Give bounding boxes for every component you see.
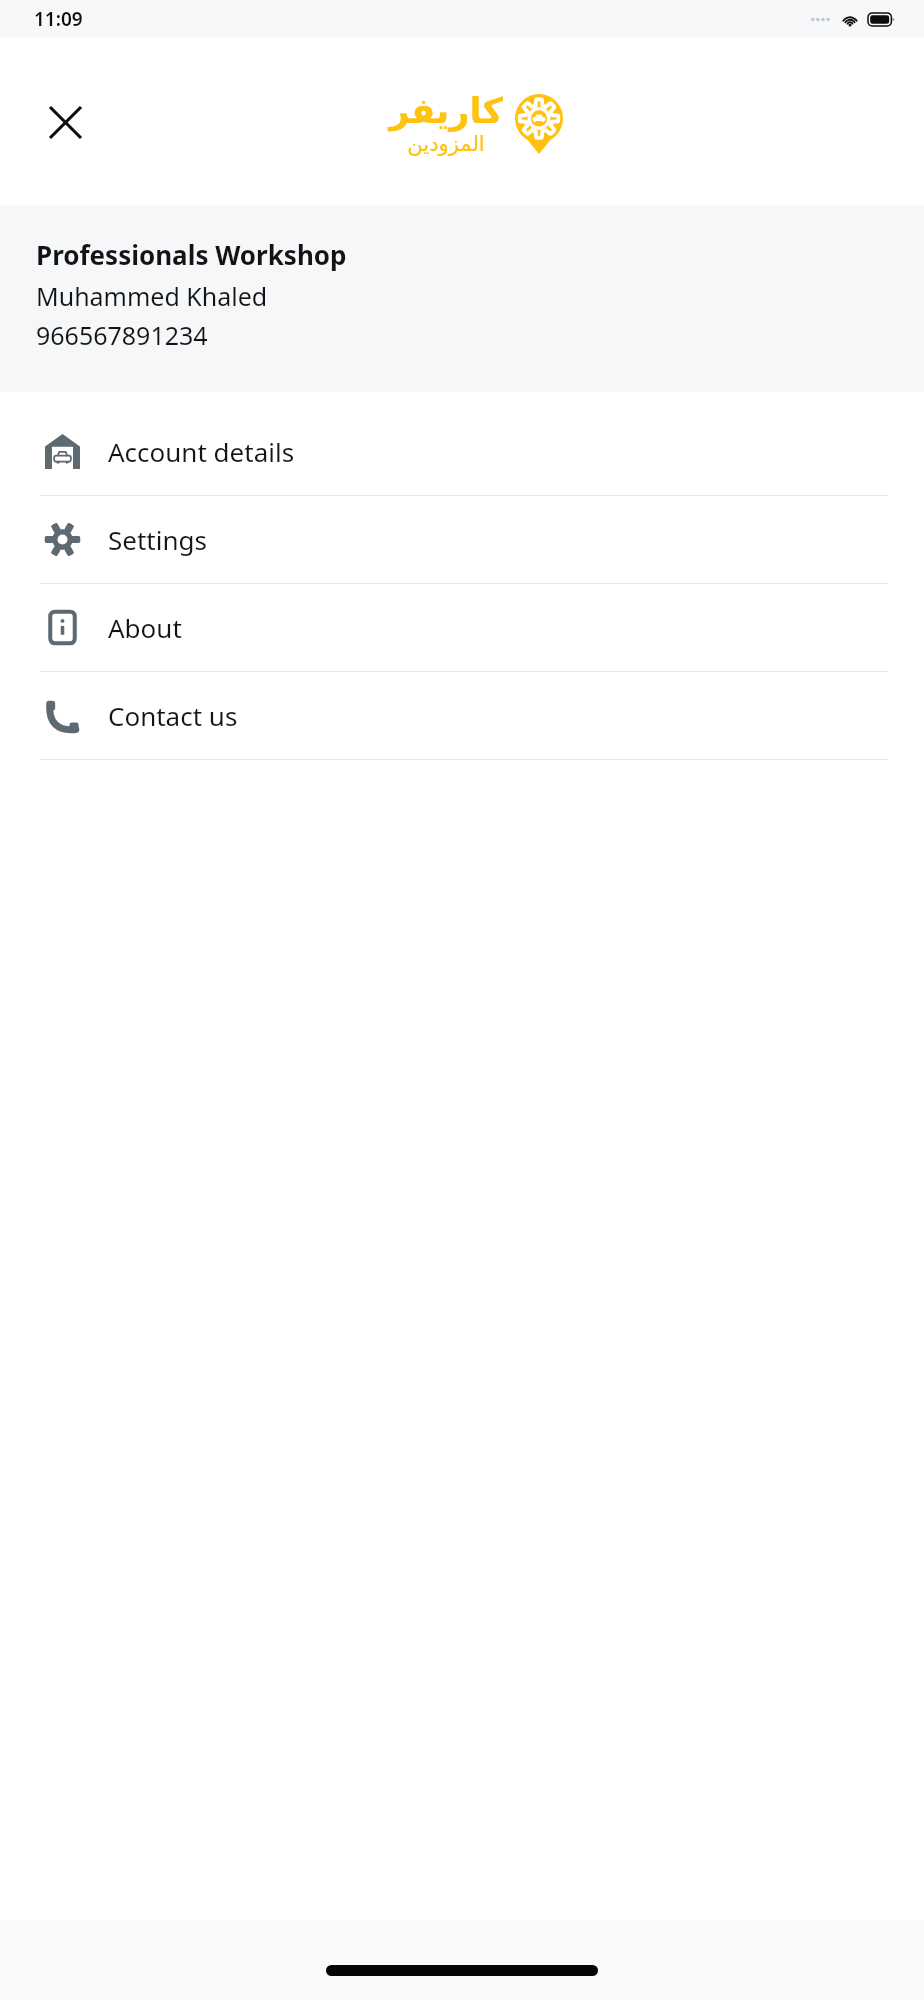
- staticText: Muhammed Khaled: [36, 279, 268, 313]
- button[interactable]: Account details: [0, 408, 924, 495]
- staticText: About: [108, 610, 182, 645]
- staticText: Professionals Workshop: [36, 237, 347, 272]
- staticText: كاريفر: [389, 91, 503, 132]
- staticText: Settings: [108, 522, 207, 557]
- button[interactable]: About: [0, 584, 924, 671]
- staticText: Contact us: [108, 698, 238, 733]
- button[interactable]: Contact us: [0, 672, 924, 759]
- staticText: المزودين: [407, 132, 485, 156]
- button[interactable]: Close: [36, 93, 94, 151]
- staticText: 966567891234: [36, 318, 208, 352]
- staticText: 11:09: [34, 6, 83, 32]
- staticText: Account details: [108, 434, 295, 469]
- button[interactable]: Settings: [0, 496, 924, 583]
